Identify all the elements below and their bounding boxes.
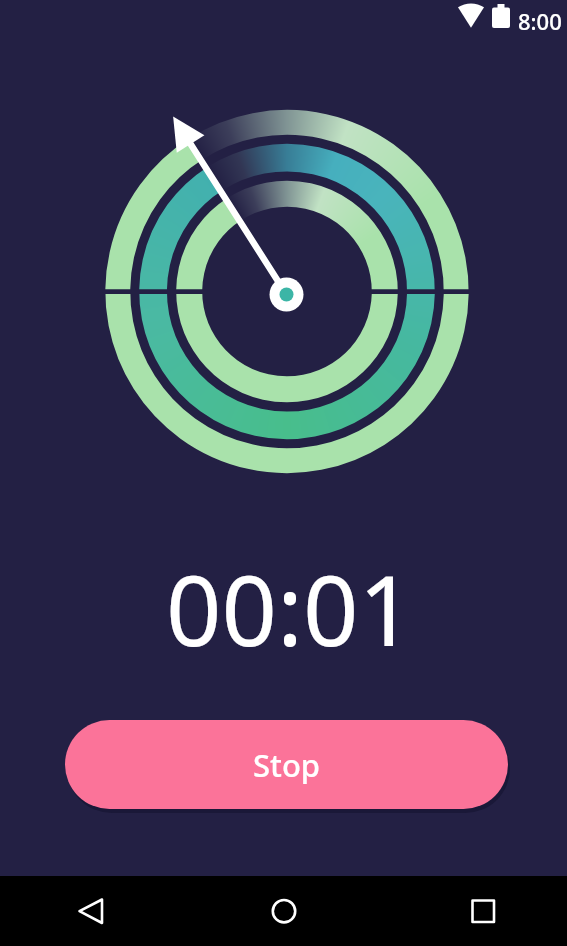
button[interactable] [55,876,125,946]
staticText: 00:01 [166,542,414,674]
button[interactable]: Stop [65,720,508,809]
staticText: Stop [253,744,321,786]
staticText: 8:00 [518,6,562,36]
button[interactable] [249,876,319,946]
button[interactable] [448,876,518,946]
